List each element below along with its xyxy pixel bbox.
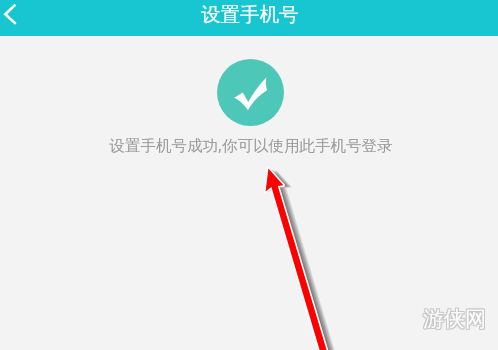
- staticText: 游侠网: [422, 305, 485, 331]
- staticText: 游侠网: [423, 306, 486, 332]
- staticText: 设置手机号成功,你可以使用此手机号登录: [109, 134, 393, 155]
- staticText: 游侠网: [422, 307, 485, 333]
- staticText: 游侠网: [424, 307, 487, 333]
- staticText: 游侠网: [423, 307, 486, 333]
- staticText: 游侠网: [424, 306, 487, 332]
- button[interactable]: Back: [0, 0, 34, 36]
- staticText: 游侠网: [424, 305, 487, 331]
- staticText: 游侠网: [422, 306, 485, 332]
- staticText: 设置手机号: [201, 2, 299, 27]
- staticText: 游侠网: [423, 305, 486, 331]
